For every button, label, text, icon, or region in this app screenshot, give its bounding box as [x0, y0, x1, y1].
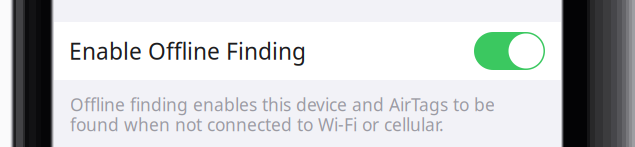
staticText: Offline finding enables this device and …	[70, 93, 495, 116]
button[interactable]: Enable Offline Finding	[54, 22, 561, 80]
staticText: Enable Offline Finding	[69, 36, 306, 66]
staticText: found when not connected to Wi-Fi or cel…	[70, 113, 444, 136]
